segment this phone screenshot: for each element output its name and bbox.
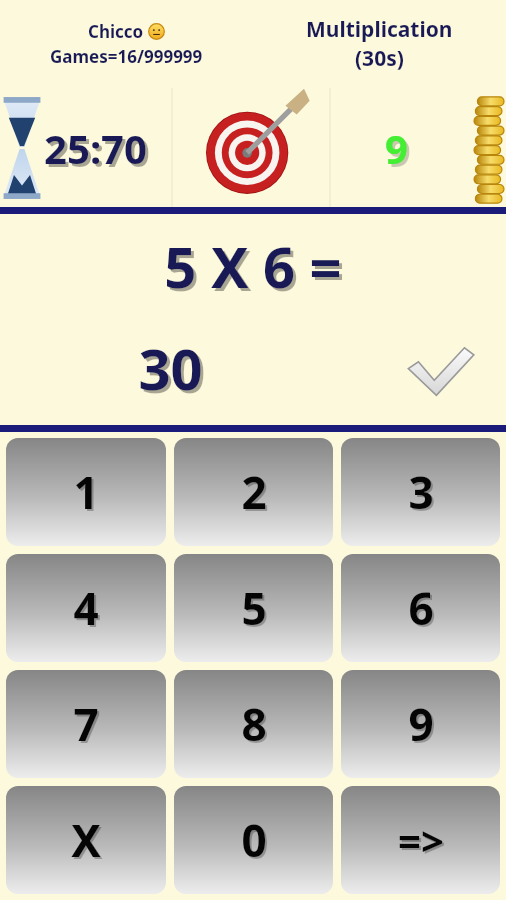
button[interactable]: 4 [6, 554, 166, 662]
staticText: 5 [243, 580, 269, 640]
staticText: 5 X 6 = [167, 231, 345, 307]
staticText: 25:70 [44, 121, 147, 175]
staticText: X [71, 810, 101, 870]
button[interactable]: X [6, 786, 166, 894]
staticText: 9 [385, 121, 408, 175]
staticText: 6 [408, 578, 434, 638]
staticText: 9 [408, 694, 434, 754]
staticText: 1 [75, 464, 101, 524]
staticText: 25:70 [47, 124, 150, 178]
button[interactable]: 7 [6, 670, 166, 778]
staticText: 8 [241, 694, 267, 754]
button[interactable]: 9 [341, 670, 500, 778]
button[interactable]: 1 [6, 438, 166, 546]
staticText: 7 [75, 696, 101, 756]
button[interactable]: 8 [174, 670, 333, 778]
staticText: 9 [388, 124, 411, 178]
staticText: 8 [243, 696, 269, 756]
staticText: => [398, 813, 444, 867]
other: Correct [404, 342, 476, 400]
button[interactable]: 5 [174, 554, 333, 662]
staticText: 30 [141, 333, 206, 409]
staticText: 5 X 6 = [164, 228, 342, 304]
staticText: 4 [73, 578, 99, 638]
staticText: 1 [73, 462, 99, 522]
staticText: 7 [73, 694, 99, 754]
button[interactable]: 6 [341, 554, 500, 662]
staticText: 0 [241, 810, 267, 870]
other: Coins [472, 92, 506, 204]
staticText: Games=16/999999 [50, 45, 203, 68]
other: Accuracy target [203, 100, 299, 196]
staticText: (30s) [355, 44, 404, 73]
staticText: 30 [138, 330, 203, 406]
staticText: 5 [241, 578, 267, 638]
staticText: 3 [410, 464, 436, 524]
button[interactable]: 3 [341, 438, 500, 546]
button[interactable]: 2 [174, 438, 333, 546]
button[interactable]: => [341, 786, 500, 894]
staticText: Chicco [88, 20, 148, 43]
staticText: 6 [410, 580, 436, 640]
staticText: 2 [241, 462, 267, 522]
staticText: 3 [408, 462, 434, 522]
staticText: => [400, 815, 446, 869]
staticText: Multiplication [306, 15, 453, 44]
other: Time remaining [2, 96, 42, 200]
staticText: 2 [243, 464, 269, 524]
button[interactable]: 0 [174, 786, 333, 894]
staticText: 9 [410, 696, 436, 756]
staticText: 4 [75, 580, 101, 640]
staticText: 0 [243, 812, 269, 872]
staticText: X [73, 812, 103, 872]
